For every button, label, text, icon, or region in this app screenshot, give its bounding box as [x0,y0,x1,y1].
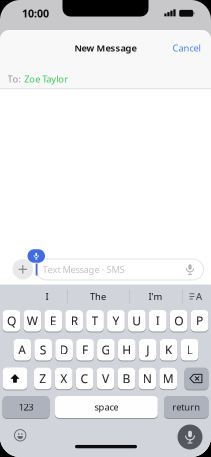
staticText: return [172,401,200,413]
staticText: I [156,313,160,329]
staticText: B [122,370,130,386]
staticText: X [60,370,67,386]
staticText: G [101,342,110,358]
staticText: L [186,342,192,358]
button[interactable]: U [128,310,146,331]
button[interactable]: Q [3,310,20,331]
button[interactable]: F [76,339,94,360]
button[interactable]: I [149,310,167,331]
staticText: O [174,313,183,329]
button[interactable]: space [55,396,158,418]
staticText: F [82,342,88,358]
button[interactable]: L [181,339,198,360]
staticText: 123 [19,401,33,413]
staticText: The [90,290,106,303]
button[interactable]: R [65,310,83,331]
staticText: E [50,313,57,329]
staticText: U [132,313,141,329]
button[interactable]: I [32,287,62,305]
staticText: Text Message · SMS [42,263,124,275]
staticText: A [18,342,26,358]
staticText: N [143,370,152,386]
staticText: New Message [74,42,136,54]
button[interactable]: N [138,368,156,389]
button[interactable]: X [55,368,72,389]
staticText: Q [7,313,16,329]
staticText: M [163,370,174,386]
button[interactable]: H [118,339,136,360]
staticText: I [45,290,48,303]
staticText: Y [112,313,119,329]
staticText: D [60,342,69,358]
staticText: C [81,370,89,386]
button[interactable]: 123 [3,396,49,418]
staticText: I'm [148,290,162,303]
button[interactable]: Shift [2,367,27,389]
staticText: To: [8,73,22,85]
button[interactable]: V [97,368,114,389]
staticText: space [94,401,118,413]
button[interactable]: Emoji [14,430,26,441]
staticText: K [165,342,172,358]
button[interactable]: W [23,310,41,331]
button[interactable]: Dictation [177,424,202,449]
button[interactable]: M [159,368,177,389]
button[interactable]: E [44,310,62,331]
button[interactable]: O [170,310,187,331]
button[interactable]: I'm [135,287,175,305]
button[interactable]: B [117,368,135,389]
button[interactable]: J [139,339,156,360]
staticText: T [91,313,98,329]
button[interactable]: G [97,339,115,360]
staticText: S [40,342,47,358]
staticText: W [27,313,38,329]
button[interactable]: A [13,339,31,360]
button[interactable]: T [86,310,104,331]
staticText: 10:00 [22,6,49,20]
button[interactable]: K [160,339,177,360]
staticText: Cancel [172,42,200,54]
button[interactable]: Z [34,368,52,389]
button[interactable]: Apps [12,259,33,280]
staticText: J [146,342,149,358]
button[interactable]: return [164,396,208,418]
button[interactable]: The [78,287,118,305]
staticText: Z [39,370,46,386]
staticText: V [102,370,109,386]
button[interactable]: Dictate [185,263,194,276]
button[interactable]: S [34,339,52,360]
button[interactable]: Cancel [166,40,206,56]
staticText: R [71,313,78,329]
button[interactable]: Y [107,310,125,331]
button[interactable]: C [76,368,93,389]
button[interactable]: D [55,339,73,360]
button[interactable]: Delete [184,367,208,389]
staticText: H [122,342,131,358]
button[interactable]: P [191,310,208,331]
staticText: Zoe Taylor [24,73,68,85]
staticText: A [196,290,202,303]
staticText: P [196,313,203,329]
button[interactable]: Predictive text options [188,289,203,304]
